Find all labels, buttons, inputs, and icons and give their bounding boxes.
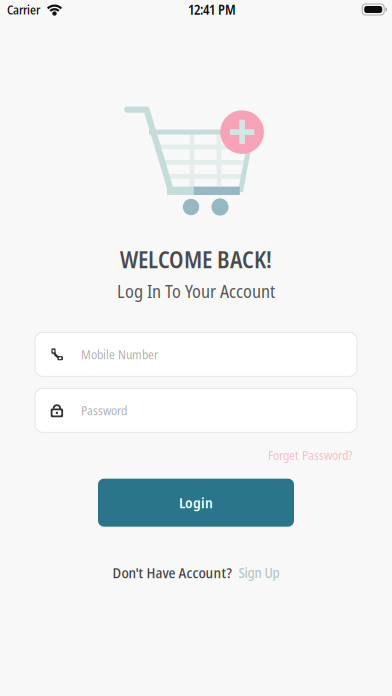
staticText: Forget Password? — [268, 446, 352, 464]
staticText: WELCOME BACK! — [120, 244, 272, 275]
staticText: Mobile Number — [81, 346, 158, 363]
staticText: Carrier — [7, 1, 40, 18]
staticText: 12:41 PM — [188, 0, 236, 19]
staticText: Don't Have Account? — [112, 563, 231, 583]
staticText: Login — [179, 493, 213, 513]
staticText: Log In To Your Account — [117, 279, 275, 303]
button[interactable]: Mobile Number — [35, 332, 357, 376]
button[interactable]: Forget Password? — [268, 446, 352, 464]
button[interactable]: Sign Up — [238, 563, 279, 582]
button[interactable]: Password — [35, 388, 357, 432]
staticText: Sign Up — [238, 563, 279, 582]
staticText: Password — [81, 402, 127, 419]
button[interactable]: Login — [98, 479, 294, 527]
